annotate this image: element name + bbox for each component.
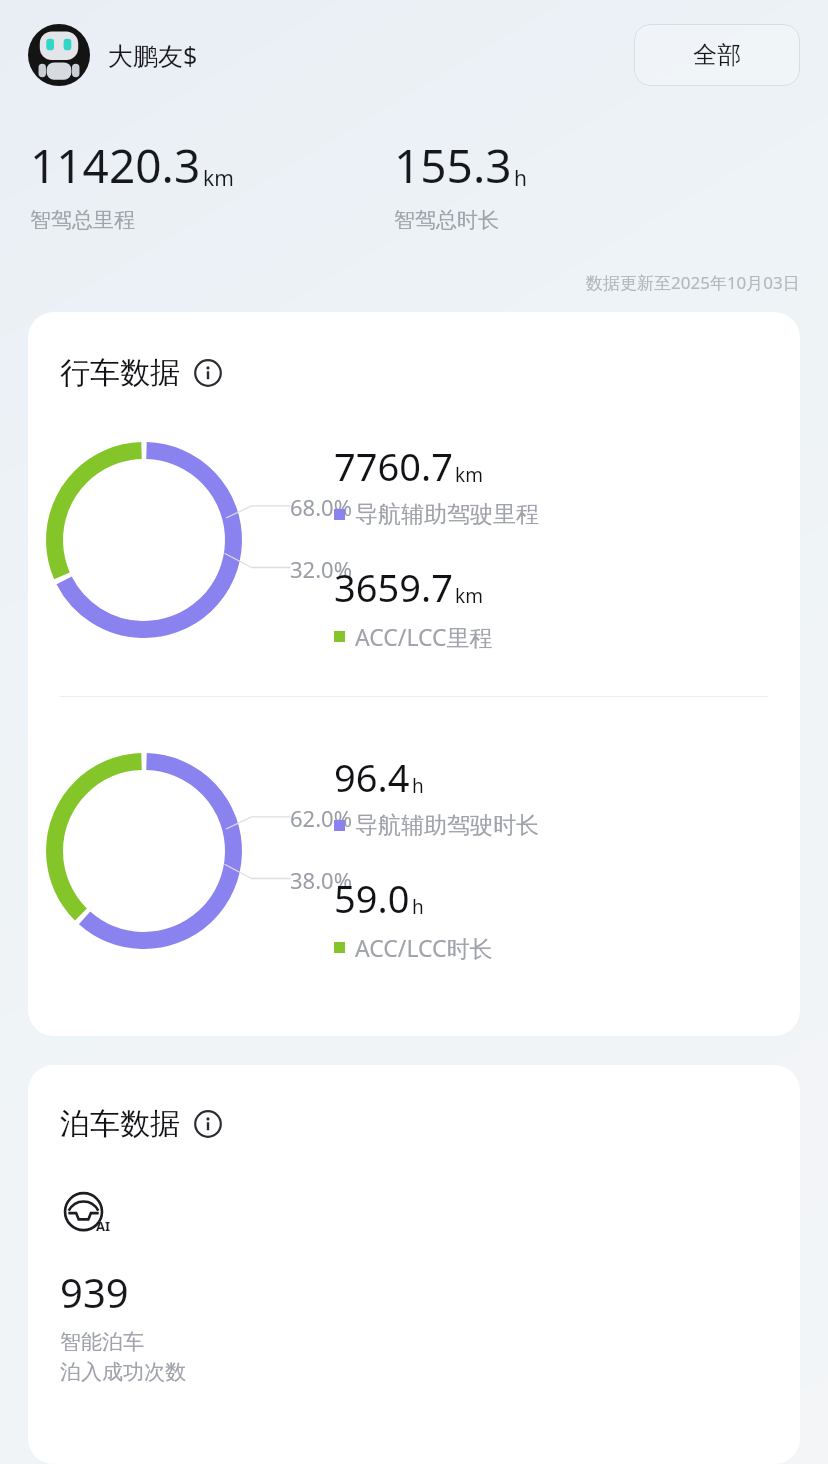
other: Information [194, 1110, 222, 1138]
staticText: 939 [60, 1265, 129, 1319]
staticText: 7760.7 [334, 440, 453, 492]
staticText: h [514, 164, 527, 193]
button[interactable]: 行车数据 [28, 312, 800, 1036]
staticText: 泊车数据 [60, 1105, 180, 1143]
staticText: km [455, 462, 483, 488]
staticText: 155.3 [394, 134, 512, 197]
staticText: 智驾总时长 [394, 207, 499, 233]
staticText: 大鹏友$ [108, 38, 198, 72]
other: Information [194, 359, 222, 387]
button[interactable]: 泊车数据 [60, 1105, 222, 1143]
staticText: km [455, 583, 483, 609]
staticText: 3659.7 [334, 561, 453, 613]
staticText: h [412, 894, 424, 920]
staticText: 智驾总里程 [30, 207, 135, 233]
staticText: 96.4 [334, 751, 410, 803]
staticText: 泊入成功次数 [60, 1359, 186, 1385]
staticText: 数据更新至2025年10月03日 [586, 271, 800, 294]
staticText: 68.0% [290, 492, 352, 522]
staticText: 38.0% [290, 865, 352, 895]
other: Profile avatar [28, 24, 90, 86]
staticText: 导航辅助驾驶时长 [355, 811, 539, 840]
button[interactable]: 全部 [634, 24, 800, 86]
staticText: 59.0 [334, 872, 410, 924]
staticText: ACC/LCC里程 [355, 621, 493, 652]
staticText: km [203, 164, 234, 193]
staticText: AI [96, 1217, 111, 1235]
staticText: ACC/LCC时长 [355, 932, 493, 963]
button[interactable]: Profile avatar [28, 24, 198, 86]
button[interactable]: 行车数据 [60, 354, 222, 392]
staticText: 行车数据 [60, 354, 180, 392]
staticText: 全部 [693, 40, 741, 70]
staticText: 32.0% [290, 554, 352, 584]
staticText: 智能泊车 [60, 1329, 144, 1355]
staticText: 62.0% [290, 803, 352, 833]
staticText: 导航辅助驾驶里程 [355, 500, 539, 529]
other: Auto parking [60, 1187, 116, 1243]
staticText: h [412, 773, 424, 799]
button[interactable]: 泊车数据 [28, 1065, 800, 1464]
staticText: 11420.3 [30, 134, 201, 197]
